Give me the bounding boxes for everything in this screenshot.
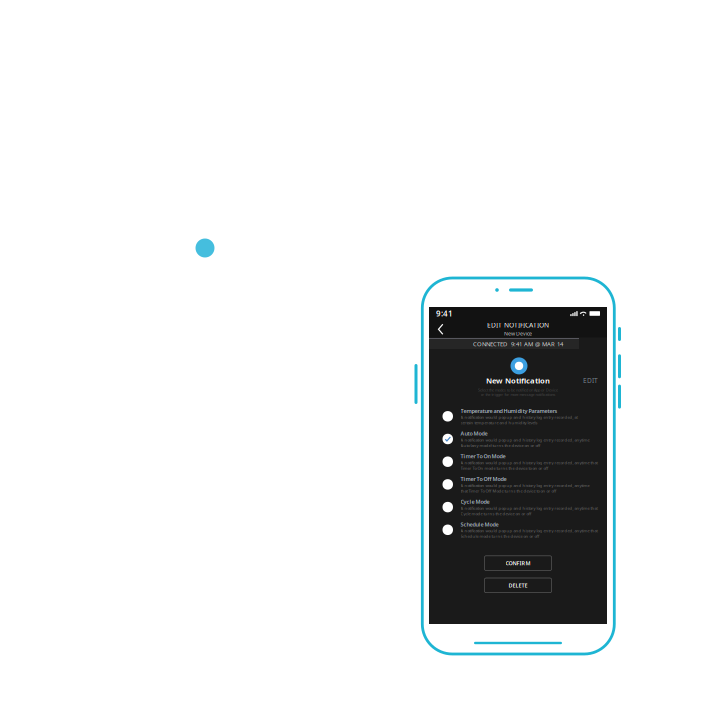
staticText: Auto (any mode) turns the device on or o… [460,443,540,448]
staticText: New Device [504,330,532,337]
button[interactable]: Back [432,320,448,338]
staticText: EDIT [583,376,598,385]
button[interactable]: Timer To On Mode [442,453,592,471]
staticText: A notification would popup and history l… [460,414,577,420]
staticText: Timer To On Mode [460,452,505,460]
button[interactable]: Auto Mode [442,430,592,448]
staticText: 9:41 [436,308,453,319]
staticText: certain temperature and humidity levels [460,420,537,425]
staticText: Timer To On mode turns the device to on … [460,465,548,471]
staticText: Cycle Mode [460,498,489,505]
staticText: Timer To Off Mode [460,475,506,482]
button[interactable]: Cycle Mode [442,498,592,516]
button[interactable]: Timer To Off Mode [442,475,592,493]
staticText: DELETE [508,582,527,589]
staticText: CONNECTED 9:41 AM @ MAR 14 [473,340,563,348]
staticText: Cycle mode turns the device on or off [460,511,531,516]
staticText: or the trigger for more message notifica… [480,392,555,397]
staticText: Schedule mode turns the device on or off [460,533,539,539]
button[interactable]: EDIT [583,376,598,385]
staticText: A notification would popup and history l… [460,460,597,465]
staticText: Auto Mode [460,430,487,437]
staticText: Select the modes to be notified on App o… [478,387,558,393]
button[interactable]: DELETE [484,578,551,593]
button[interactable]: Schedule Mode [442,521,592,539]
staticText: that Timer To Off Mode turns the device … [460,488,556,494]
staticText: EDIT NOTIFICATION [487,320,549,329]
staticText: Schedule Mode [460,520,498,528]
button[interactable]: CONFIRM [484,556,551,570]
staticText: A notification would popup and history l… [460,437,589,443]
button[interactable]: Temperature and Humidity Parameters [442,407,592,425]
staticText: New Notification [486,375,550,386]
staticText: Temperature and Humidity Parameters [460,407,557,414]
staticText: A notification would popup and history l… [460,483,589,488]
staticText: A notification would popup and history l… [460,505,597,511]
staticText: A notification would popup and history l… [460,528,597,533]
staticText: CONFIRM [505,559,530,567]
